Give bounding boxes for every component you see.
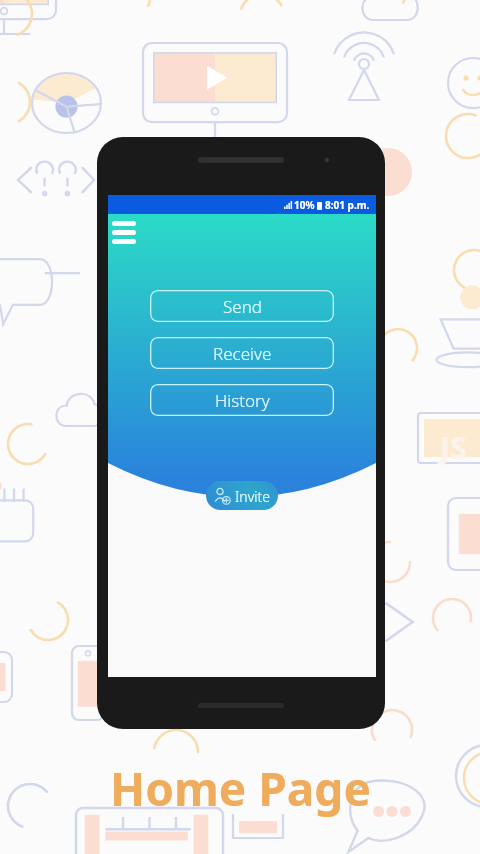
staticText: 10% — [294, 198, 315, 212]
button[interactable]: Menu — [109, 217, 139, 247]
button[interactable]: Invite — [206, 481, 278, 510]
staticText: History — [215, 389, 270, 412]
staticText: Invite — [235, 487, 270, 506]
staticText: JS — [440, 427, 467, 468]
button[interactable]: Send — [150, 290, 334, 322]
button[interactable]: Receive — [150, 337, 334, 369]
staticText: Home Page — [110, 757, 371, 820]
staticText: 8:01 p.m. — [325, 198, 370, 212]
button[interactable]: History — [150, 384, 334, 416]
staticText: Send — [223, 295, 262, 318]
staticText: Receive — [213, 342, 272, 365]
